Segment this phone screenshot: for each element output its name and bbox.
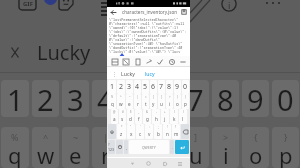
button[interactable]: Save <box>181 9 187 15</box>
button[interactable]: Close <box>11 47 19 58</box>
button[interactable]: * <box>117 124 126 139</box>
button[interactable]: Back <box>161 160 168 167</box>
button[interactable]: Space <box>129 140 169 154</box>
button[interactable]: Home <box>145 160 152 167</box>
button[interactable]: = <box>122 127 149 168</box>
staticText: h <box>155 116 158 122</box>
button[interactable]: { <box>242 127 269 168</box>
staticText: | <box>103 131 108 143</box>
button[interactable]: 7 <box>182 80 209 117</box>
button[interactable]: 6 <box>152 80 179 117</box>
button[interactable]: Info <box>221 0 237 12</box>
button[interactable]: Recents <box>176 160 183 167</box>
button[interactable]: 3 <box>62 80 89 117</box>
button[interactable]: 1 <box>108 80 116 94</box>
button[interactable]: > <box>212 127 239 168</box>
button[interactable]: 5 <box>122 80 149 117</box>
button[interactable]: > <box>166 94 173 109</box>
button[interactable]: Backspace <box>181 124 189 139</box>
button[interactable]: } <box>272 127 299 168</box>
staticText: 5 <box>143 82 148 92</box>
button[interactable]: , <box>124 140 128 154</box>
button[interactable]: 3 <box>126 80 133 94</box>
staticText: \"lastPermanentSelectedCharacter\" <box>109 17 179 21</box>
button[interactable]: $ <box>127 109 134 124</box>
button[interactable]: Tool 1 <box>122 58 129 65</box>
button[interactable]: 0 <box>272 80 299 117</box>
button[interactable]: 8 <box>166 80 173 94</box>
button[interactable]: Hide keyboard <box>129 160 136 167</box>
button[interactable]: ^ <box>117 94 125 109</box>
button[interactable]: ( <box>170 109 178 124</box>
button[interactable]: Enter <box>175 140 189 154</box>
staticText: # <box>122 110 124 114</box>
button[interactable]: 8 <box>212 80 239 117</box>
button[interactable]: 9 <box>242 80 269 117</box>
button[interactable]: _ <box>135 109 142 124</box>
button[interactable]: 7 <box>158 80 165 94</box>
button[interactable]: " <box>127 124 135 139</box>
button[interactable]: | <box>92 127 119 168</box>
button[interactable]: lucy <box>145 70 155 77</box>
button[interactable]: Tool 6 <box>179 58 186 65</box>
button[interactable]: ! <box>163 124 171 139</box>
button[interactable]: GIF <box>19 0 36 10</box>
button[interactable]: Tool 0 <box>111 58 118 65</box>
button[interactable]: - <box>152 109 160 124</box>
button[interactable]: 2 <box>32 80 59 117</box>
button[interactable]: Tool 4 <box>156 58 163 65</box>
staticText: ? <box>175 125 177 129</box>
staticText: ) <box>183 110 184 114</box>
staticText: z <box>120 131 123 137</box>
button[interactable]: = <box>142 94 149 109</box>
button[interactable]: Tool 3 <box>145 58 152 65</box>
staticText: q <box>8 140 22 168</box>
staticText: 6 <box>151 82 156 92</box>
button[interactable]: ] <box>182 127 209 168</box>
button[interactable]: # <box>119 109 126 124</box>
button[interactable]: ~ <box>126 94 133 109</box>
button[interactable]: % <box>108 94 116 109</box>
button[interactable]: & <box>143 109 151 124</box>
button[interactable]: [ <box>152 127 179 168</box>
button[interactable]: Lucky <box>37 39 91 66</box>
staticText: w <box>119 101 123 107</box>
button[interactable]: Shift <box>108 124 116 139</box>
button[interactable]: + <box>161 109 169 124</box>
button[interactable]: 6 <box>150 80 157 94</box>
button[interactable]: | <box>134 94 141 109</box>
button[interactable]: 4 <box>92 80 119 117</box>
button[interactable]: 9 <box>174 80 181 94</box>
button[interactable]: ? <box>172 124 180 139</box>
button[interactable]: } <box>182 94 189 109</box>
button[interactable]: % <box>1 127 29 168</box>
button[interactable]: 0 <box>182 80 189 94</box>
button[interactable]: ; <box>154 124 162 139</box>
button[interactable]: Back <box>110 9 117 16</box>
button[interactable]: Emoji <box>116 140 123 154</box>
button[interactable]: ^ <box>32 127 59 168</box>
button[interactable]: @ <box>111 109 118 124</box>
button[interactable]: : <box>145 124 153 139</box>
button[interactable]: 5 <box>142 80 149 94</box>
button[interactable]: 2 <box>117 80 125 94</box>
button[interactable]: Stickers <box>59 0 73 10</box>
button[interactable]: Tool 2 <box>134 58 141 65</box>
button[interactable]: ~ <box>62 127 89 168</box>
button[interactable]: ' <box>136 124 144 139</box>
button[interactable]: 1 <box>1 80 29 117</box>
button[interactable]: ?123 <box>108 140 115 154</box>
button[interactable]: { <box>174 94 181 109</box>
button[interactable]: ] <box>158 94 165 109</box>
button[interactable]: Tool 5 <box>168 58 175 65</box>
button[interactable]: ) <box>179 109 187 124</box>
staticText: v <box>148 131 151 137</box>
button[interactable]: More options <box>266 2 280 4</box>
button[interactable]: 4 <box>134 80 141 94</box>
button[interactable]: Lucky <box>121 70 135 77</box>
staticText: y <box>160 140 172 168</box>
button[interactable]: ⋮ <box>112 71 117 77</box>
staticText: 1 <box>110 82 115 92</box>
button[interactable]: [ <box>150 94 157 109</box>
